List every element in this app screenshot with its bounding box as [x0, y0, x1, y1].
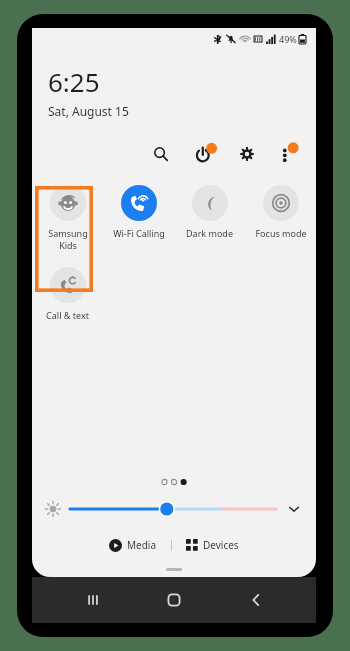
- button[interactable]: More options: [272, 139, 302, 169]
- staticText: Dark mode: [186, 227, 233, 239]
- button[interactable]: Samsung: [32, 179, 103, 257]
- button[interactable]: Brightness: [42, 498, 64, 520]
- button[interactable]: Power off: [190, 139, 220, 169]
- staticText: Sat, August 15: [48, 103, 129, 119]
- button[interactable]: [70, 498, 276, 520]
- button[interactable]: Expand: [282, 497, 306, 521]
- button[interactable]: Media: [103, 534, 163, 556]
- staticText: Kids: [59, 239, 77, 251]
- staticText: Wi-Fi Calling: [113, 227, 165, 239]
- button[interactable]: Home: [153, 579, 195, 621]
- button[interactable]: Recents: [72, 579, 114, 621]
- button[interactable]: Focus mode: [245, 179, 316, 245]
- staticText: 49%: [279, 33, 297, 45]
- button[interactable]: Search: [146, 139, 176, 169]
- button[interactable]: Devices: [180, 534, 245, 556]
- staticText: Call & text: [46, 309, 89, 321]
- staticText: Samsung: [48, 227, 88, 239]
- button[interactable]: Settings: [232, 139, 262, 169]
- button[interactable]: Call & text: [32, 261, 103, 327]
- staticText: Media: [127, 538, 157, 552]
- staticText: 6:25: [48, 64, 100, 99]
- staticText: Devices: [203, 538, 239, 552]
- button[interactable]: Back: [235, 579, 277, 621]
- staticText: Focus mode: [255, 227, 307, 239]
- button[interactable]: Dark mode: [174, 179, 245, 245]
- button[interactable]: Wi-Fi Calling: [103, 179, 174, 245]
